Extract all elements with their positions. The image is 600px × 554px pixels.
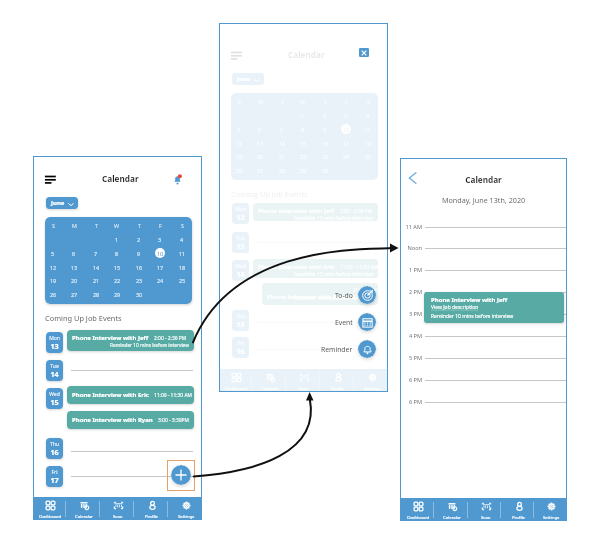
staticText: June xyxy=(51,199,65,207)
staticText: Event xyxy=(335,318,353,327)
button[interactable]: Menu xyxy=(44,175,57,184)
button[interactable]: June xyxy=(46,197,78,209)
staticText: Profile xyxy=(512,514,526,520)
staticText: Tue xyxy=(46,363,63,370)
staticText: T xyxy=(138,222,141,229)
staticText: 16 xyxy=(136,264,143,271)
button[interactable]: Profile xyxy=(320,369,354,392)
staticText: Scan xyxy=(113,513,123,519)
staticText: Mon xyxy=(232,206,249,213)
staticText: 4 PM xyxy=(400,332,422,341)
button[interactable]: Phone Interview with Jeff xyxy=(67,330,194,351)
button[interactable]: Fri xyxy=(46,466,63,487)
staticText: 7 xyxy=(280,126,284,133)
staticText: Calendar xyxy=(443,514,462,520)
staticText: S xyxy=(181,222,184,229)
staticText: Calendar xyxy=(102,173,139,184)
staticText: Phone Interview with Eric xyxy=(258,263,335,271)
button[interactable]: Calendar xyxy=(434,498,468,521)
staticText: Reminder 10 mins before interview xyxy=(253,215,373,221)
button[interactable]: Wed xyxy=(46,388,63,409)
button[interactable]: Reminder xyxy=(309,339,376,359)
button[interactable]: Scan xyxy=(100,497,134,520)
staticText: Phone Interview with Jeff xyxy=(72,334,149,342)
staticText: View Job description xyxy=(431,304,479,311)
button[interactable]: Calendar xyxy=(66,497,100,520)
button[interactable]: Dashboard xyxy=(219,369,252,392)
staticText: 2 PM xyxy=(400,288,422,297)
button[interactable]: Phone Interview with Eric xyxy=(67,386,194,404)
staticText: 6 PM xyxy=(400,398,422,407)
staticText: 15 xyxy=(232,319,249,329)
staticText: Phone Interview with Ryan xyxy=(72,416,153,424)
button[interactable]: Settings xyxy=(354,369,388,392)
staticText: 12 xyxy=(232,212,249,222)
button[interactable]: Dashboard xyxy=(400,498,434,521)
button[interactable]: Settings xyxy=(534,498,567,521)
staticText: 11 xyxy=(365,126,372,133)
staticText: W xyxy=(114,222,120,229)
staticText: Reminder 10 mins before interview xyxy=(67,342,189,349)
staticText: S xyxy=(367,98,370,105)
staticText: 23 xyxy=(136,277,143,284)
staticText: 3 xyxy=(158,236,162,243)
staticText: 1 xyxy=(301,112,305,119)
staticText: F xyxy=(345,98,348,105)
staticText: 5 xyxy=(51,250,55,257)
staticText: Settings xyxy=(543,514,560,520)
staticText: 12 xyxy=(50,264,57,271)
button[interactable]: Add event xyxy=(171,465,191,485)
button[interactable]: Back xyxy=(407,171,419,185)
staticText: 2 xyxy=(323,112,327,119)
button[interactable]: Mon xyxy=(46,332,63,353)
button[interactable]: Profile xyxy=(501,498,534,521)
button[interactable]: Calendar xyxy=(252,369,286,392)
staticText: Noon xyxy=(400,244,422,253)
staticText: 20 xyxy=(71,277,78,284)
staticText: 4 xyxy=(366,112,370,119)
staticText: T xyxy=(95,222,98,229)
button[interactable]: Event xyxy=(309,312,376,332)
staticText: Phone Interview with Jeff xyxy=(431,296,508,304)
staticText: 6 xyxy=(258,126,262,133)
button[interactable]: Close xyxy=(359,48,369,57)
button[interactable]: Notifications xyxy=(173,174,182,185)
staticText: 27 xyxy=(257,167,264,174)
staticText: Calendar xyxy=(261,385,280,391)
staticText: Monday, June 13th, 2020 xyxy=(400,195,567,205)
button[interactable]: Settings xyxy=(168,497,202,520)
staticText: 13 xyxy=(232,241,249,251)
button[interactable]: Tue xyxy=(46,360,63,381)
staticText: 30 xyxy=(136,291,143,298)
button[interactable]: To-do xyxy=(309,285,376,305)
button[interactable]: Phone Interview with Ryan xyxy=(67,411,194,429)
staticText: 19 xyxy=(50,277,57,284)
staticText: 22 xyxy=(114,277,121,284)
staticText: 1 xyxy=(115,236,119,243)
staticText: 13 xyxy=(46,341,63,351)
staticText: Calendar xyxy=(400,174,567,185)
button[interactable]: Scan xyxy=(468,498,501,521)
staticText: 1 PM xyxy=(400,266,422,275)
staticText: 24 xyxy=(343,153,350,160)
staticText: 16 xyxy=(322,140,329,147)
staticText: June xyxy=(237,75,251,83)
staticText: 2:00 - 2:30 PM xyxy=(353,287,378,301)
staticText: 9 xyxy=(137,250,141,257)
staticText: 8 xyxy=(301,126,305,133)
staticText: T xyxy=(281,98,284,105)
staticText: Fri xyxy=(46,469,63,476)
staticText: Dashboard xyxy=(39,513,62,519)
button[interactable]: Scan xyxy=(286,369,320,392)
staticText: Fri xyxy=(232,340,249,347)
staticText: Tue xyxy=(232,235,249,242)
button[interactable]: Phone Interview with Jeff xyxy=(424,292,564,323)
button[interactable]: Profile xyxy=(134,497,168,520)
staticText: 22 xyxy=(300,153,307,160)
staticText: 29 xyxy=(300,167,307,174)
staticText: 2:00 - 2:30 PM xyxy=(340,208,373,215)
button[interactable]: Thu xyxy=(46,438,63,459)
button[interactable]: Dashboard xyxy=(33,497,66,520)
staticText: Reminder 10 mins before interview xyxy=(262,295,373,302)
staticText: Reminder 10 mins before interview xyxy=(431,313,514,320)
